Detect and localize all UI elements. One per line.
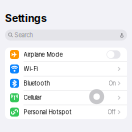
staticText: Off xyxy=(108,109,116,116)
button[interactable]: Personal Hotspot xyxy=(5,105,127,119)
staticText: Search xyxy=(14,31,32,39)
staticText: Wi-Fi xyxy=(23,65,37,72)
staticText: Personal Hotspot xyxy=(23,109,71,116)
staticText: On xyxy=(109,80,116,87)
button[interactable]: Bluetooth xyxy=(5,76,127,90)
staticText: Settings xyxy=(5,12,47,25)
staticText: Cellular xyxy=(23,94,41,101)
button[interactable]: Wi-Fi xyxy=(5,62,127,76)
button[interactable]: Airplane Mode xyxy=(5,48,127,61)
button[interactable]: Cellular xyxy=(5,91,127,105)
staticText: Airplane Mode xyxy=(23,51,62,58)
staticText: Bluetooth xyxy=(23,80,49,87)
